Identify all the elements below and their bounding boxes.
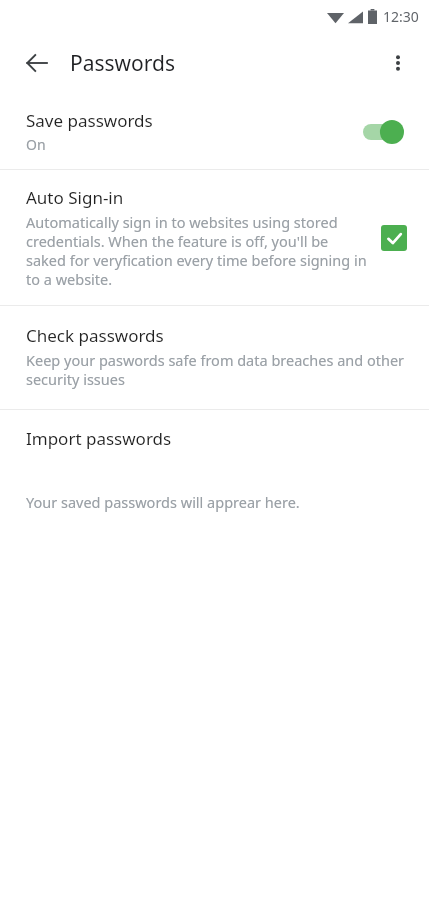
staticText: On bbox=[26, 135, 46, 154]
staticText: Auto Sign-in bbox=[26, 186, 124, 209]
button[interactable]: Back bbox=[14, 40, 60, 86]
staticText: Check passwords bbox=[26, 324, 164, 347]
staticText: 12:30 bbox=[383, 7, 419, 26]
button[interactable]: Auto Sign-in bbox=[0, 170, 429, 305]
staticText: Import passwords bbox=[26, 427, 172, 450]
staticText: Passwords bbox=[70, 49, 176, 78]
button[interactable]: Check passwords bbox=[0, 306, 429, 409]
staticText: Keep your paswords safe from data breach… bbox=[26, 350, 407, 389]
staticText: Your saved passwords will apprear here. bbox=[26, 492, 300, 512]
staticText: Save passwords bbox=[26, 109, 153, 132]
button[interactable]: Import passwords bbox=[0, 410, 429, 466]
button[interactable]: Save passwords toggle bbox=[363, 118, 407, 146]
button[interactable]: Save passwords bbox=[0, 94, 429, 169]
staticText: Automatically sign in to websites using … bbox=[26, 212, 369, 289]
button[interactable]: Auto Sign-in checkbox bbox=[381, 225, 407, 251]
button[interactable]: More options bbox=[375, 40, 421, 86]
